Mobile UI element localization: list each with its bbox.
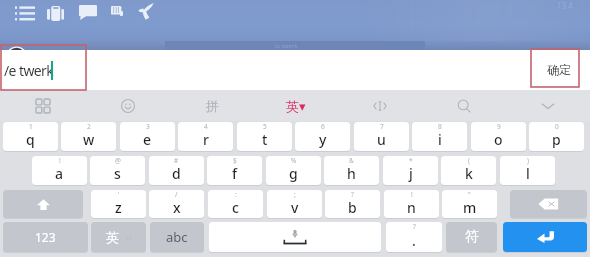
staticText: g [289,164,298,183]
staticText: * [409,156,413,165]
staticText: % [291,156,297,165]
button[interactable]: 确定 [531,50,579,88]
button[interactable]: Menu [10,2,40,24]
button[interactable]: 7 [354,122,409,151]
button[interactable]: # [149,156,204,185]
button[interactable]: ; [267,190,322,218]
button[interactable] [510,190,587,218]
button[interactable] [503,222,587,252]
staticText: # [174,156,179,165]
staticText: v [291,198,299,217]
staticText: o [494,130,503,149]
button[interactable]: 9 [471,122,526,151]
staticText: h [347,164,356,183]
staticText: 2 [87,122,91,131]
button[interactable]: 英▾ [254,90,338,121]
staticText: ! [59,156,61,165]
button[interactable]: 123 [3,222,88,252]
button[interactable] [3,190,83,218]
staticText: ? [413,222,416,231]
button[interactable]: Chat [74,1,102,24]
staticText: 符 [465,228,479,246]
staticText: $ [233,156,237,165]
staticText: z [115,198,122,217]
button[interactable]: @ [90,156,145,185]
staticText: 8 [438,122,442,131]
button[interactable]: ' [91,190,146,218]
staticText: l [526,164,530,183]
staticText: abc [166,228,188,246]
button[interactable] [209,222,381,252]
staticText: a [55,164,64,183]
button[interactable]: : [208,190,263,218]
button[interactable]: * [383,156,438,185]
staticText: 123 [35,229,56,245]
button[interactable]: % [266,156,321,185]
staticText: ! [411,190,413,199]
staticText: 7 [380,122,384,131]
button[interactable]: 5 [237,122,292,151]
staticText: 1 [29,122,33,131]
button[interactable]: /e twerk [0,50,90,90]
staticText: y [319,130,327,149]
staticText: 9 [497,122,501,131]
button[interactable]: Fist [106,2,128,20]
staticText: @ [115,156,121,165]
button[interactable]: ! [384,190,439,218]
staticText: 13 4 [557,0,573,11]
staticText: 5 [263,122,267,131]
staticText: 确定 [547,62,571,77]
button[interactable]: Move cursor [338,90,422,121]
staticText: c [232,198,239,217]
button[interactable]: ? [325,190,380,218]
button[interactable]: abc [150,222,204,252]
staticText: i [438,130,442,149]
staticText: 3 [146,122,150,131]
button[interactable]: " [442,190,497,218]
button[interactable]: Emoji [85,90,170,121]
staticText: 拼 [206,98,219,114]
staticText: j [409,164,413,183]
button[interactable]: / [149,190,204,218]
button[interactable]: 3 [120,122,175,151]
staticText: 英 [106,229,119,245]
button[interactable]: 1 [3,122,58,151]
staticText: 英▾ [286,98,306,114]
button[interactable]: $ [207,156,262,185]
staticText: t [262,130,268,149]
button[interactable]: Search [422,90,506,121]
staticText: . [412,231,416,250]
button[interactable]: 6 [295,122,350,151]
button[interactable]: 2 [61,122,116,151]
staticText: ) [527,156,529,165]
button[interactable]: ) [500,156,555,185]
staticText: u [377,130,386,149]
button[interactable]: Bird [133,0,159,24]
button[interactable]: Keyboard layout [0,90,85,121]
staticText: p [552,130,561,149]
button[interactable]: & [324,156,379,185]
button[interactable]: 符 [446,222,497,252]
button[interactable]: ( [441,156,496,185]
button[interactable]: ! [32,156,87,185]
staticText: ( [468,156,470,165]
button[interactable]: ? [386,222,442,252]
staticText: 6 [321,122,325,131]
staticText: 4 [204,122,208,131]
staticText: Is twerk [275,42,298,50]
button[interactable]: Hide keyboard [506,90,590,121]
staticText: 0 [555,122,559,131]
staticText: & [349,156,354,165]
button[interactable]: 拼 [170,90,254,121]
button[interactable]: 8 [412,122,467,151]
staticText: r [203,130,209,149]
staticText: s [114,164,121,183]
staticText: n [407,198,416,217]
staticText: q [26,130,35,149]
staticText: x [173,198,181,217]
button[interactable]: 英 [91,222,146,252]
button[interactable]: 0 [529,122,584,151]
staticText: d [172,164,181,183]
button[interactable]: Bag [42,2,69,25]
button[interactable]: 4 [178,122,233,151]
